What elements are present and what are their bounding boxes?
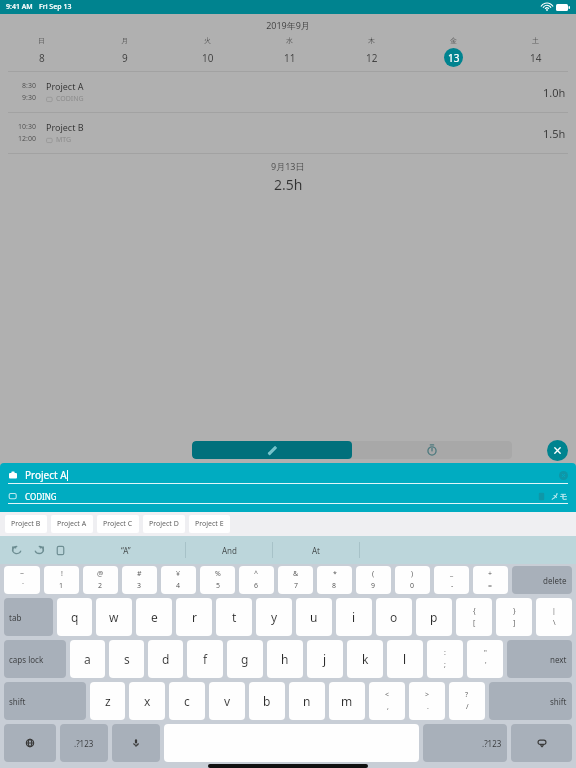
staticText: 月 xyxy=(121,36,128,45)
button[interactable]: d xyxy=(148,640,183,678)
button[interactable]: Project B xyxy=(5,515,47,533)
button[interactable]: i xyxy=(336,598,372,636)
button[interactable]: r xyxy=(176,598,212,636)
button[interactable]: % xyxy=(200,566,235,594)
button[interactable]: _ xyxy=(434,566,469,594)
button[interactable]: p xyxy=(416,598,452,636)
button[interactable]: " xyxy=(467,640,503,678)
button[interactable]: Manual entry xyxy=(192,441,352,459)
button[interactable]: Project A xyxy=(8,467,568,483)
button[interactable]: Project E xyxy=(189,515,230,533)
button[interactable]: Dictation xyxy=(112,724,160,762)
button[interactable]: y xyxy=(256,598,292,636)
button[interactable]: tab xyxy=(4,598,53,636)
staticText: Project E xyxy=(195,519,224,529)
button[interactable]: ) xyxy=(395,566,430,594)
button[interactable]: * xyxy=(317,566,352,594)
button[interactable]: } xyxy=(496,598,532,636)
button[interactable]: ~ xyxy=(4,566,40,594)
button[interactable]: > xyxy=(409,682,445,720)
staticText: y xyxy=(271,609,278,625)
button[interactable]: v xyxy=(209,682,245,720)
button[interactable]: { xyxy=(456,598,492,636)
button[interactable]: 10:30 xyxy=(0,113,576,153)
button[interactable]: 8:30 xyxy=(0,72,576,112)
staticText: j xyxy=(323,651,327,667)
button[interactable]: u xyxy=(296,598,332,636)
button[interactable]: x xyxy=(129,682,165,720)
button[interactable]: t xyxy=(216,598,252,636)
button[interactable]: | xyxy=(536,598,572,636)
button[interactable]: & xyxy=(278,566,313,594)
button[interactable]: k xyxy=(347,640,383,678)
button[interactable]: g xyxy=(227,640,263,678)
button[interactable]: Project C xyxy=(97,515,139,533)
button[interactable]: e xyxy=(136,598,172,636)
button[interactable]: 火 xyxy=(166,36,248,67)
staticText: 9 xyxy=(371,581,376,591)
staticText: 金 xyxy=(450,36,457,45)
button[interactable]: delete xyxy=(512,566,572,594)
button[interactable]: Hide keyboard xyxy=(511,724,572,762)
button[interactable]: Undo xyxy=(10,543,24,557)
button[interactable]: l xyxy=(387,640,423,678)
button[interactable]: next xyxy=(507,640,572,678)
button[interactable]: And xyxy=(186,536,272,564)
button[interactable]: 水 xyxy=(248,36,330,67)
button[interactable]: “A” xyxy=(67,536,185,564)
button[interactable]: Close xyxy=(547,440,568,461)
button[interactable]: 金 xyxy=(412,36,494,67)
staticText: x xyxy=(144,693,151,709)
button[interactable]: At xyxy=(273,536,359,564)
button[interactable]: m xyxy=(329,682,365,720)
button[interactable]: : xyxy=(427,640,463,678)
button[interactable]: 木 xyxy=(330,36,412,67)
button[interactable]: ( xyxy=(356,566,391,594)
button[interactable]: j xyxy=(307,640,343,678)
button[interactable]: w xyxy=(96,598,132,636)
button[interactable]: + xyxy=(473,566,508,594)
button[interactable]: h xyxy=(267,640,303,678)
button[interactable]: Project A xyxy=(51,515,93,533)
staticText: p xyxy=(430,609,438,625)
button[interactable]: ¥ xyxy=(161,566,196,594)
button[interactable]: Timer xyxy=(352,441,512,459)
button[interactable]: < xyxy=(369,682,405,720)
button[interactable]: Clear xyxy=(559,471,568,480)
button[interactable]: f xyxy=(187,640,223,678)
button[interactable]: Project D xyxy=(143,515,185,533)
button[interactable]: Paste xyxy=(54,544,67,557)
button[interactable]: .?123 xyxy=(60,724,108,762)
button[interactable]: b xyxy=(249,682,285,720)
staticText: 0 xyxy=(410,581,415,591)
button[interactable]: ^ xyxy=(239,566,274,594)
button[interactable]: shift xyxy=(4,682,86,720)
staticText: 1.5h xyxy=(543,126,566,141)
button[interactable]: caps lock xyxy=(4,640,66,678)
button[interactable]: c xyxy=(169,682,205,720)
staticText: delete xyxy=(543,575,567,586)
button[interactable]: 月 xyxy=(83,36,166,67)
button[interactable]: Redo xyxy=(32,543,46,557)
button[interactable]: CODING xyxy=(8,489,568,503)
button[interactable]: o xyxy=(376,598,412,636)
button[interactable]: Globe xyxy=(4,724,56,762)
staticText: ^ xyxy=(254,569,259,579)
button[interactable]: 土 xyxy=(494,36,576,67)
button[interactable]: .?123 xyxy=(423,724,507,762)
staticText: 2 xyxy=(98,581,103,591)
button[interactable]: ! xyxy=(44,566,79,594)
button[interactable]: shift xyxy=(489,682,572,720)
button[interactable]: @ xyxy=(83,566,118,594)
staticText: : xyxy=(444,648,446,658)
button[interactable]: 日 xyxy=(0,36,83,67)
button[interactable]: q xyxy=(57,598,92,636)
button[interactable]: # xyxy=(122,566,157,594)
button[interactable]: ? xyxy=(449,682,485,720)
button[interactable]: n xyxy=(289,682,325,720)
button[interactable]: s xyxy=(109,640,144,678)
button[interactable]: a xyxy=(70,640,105,678)
staticText: 9月13日 xyxy=(271,160,305,172)
button[interactable]: z xyxy=(90,682,125,720)
